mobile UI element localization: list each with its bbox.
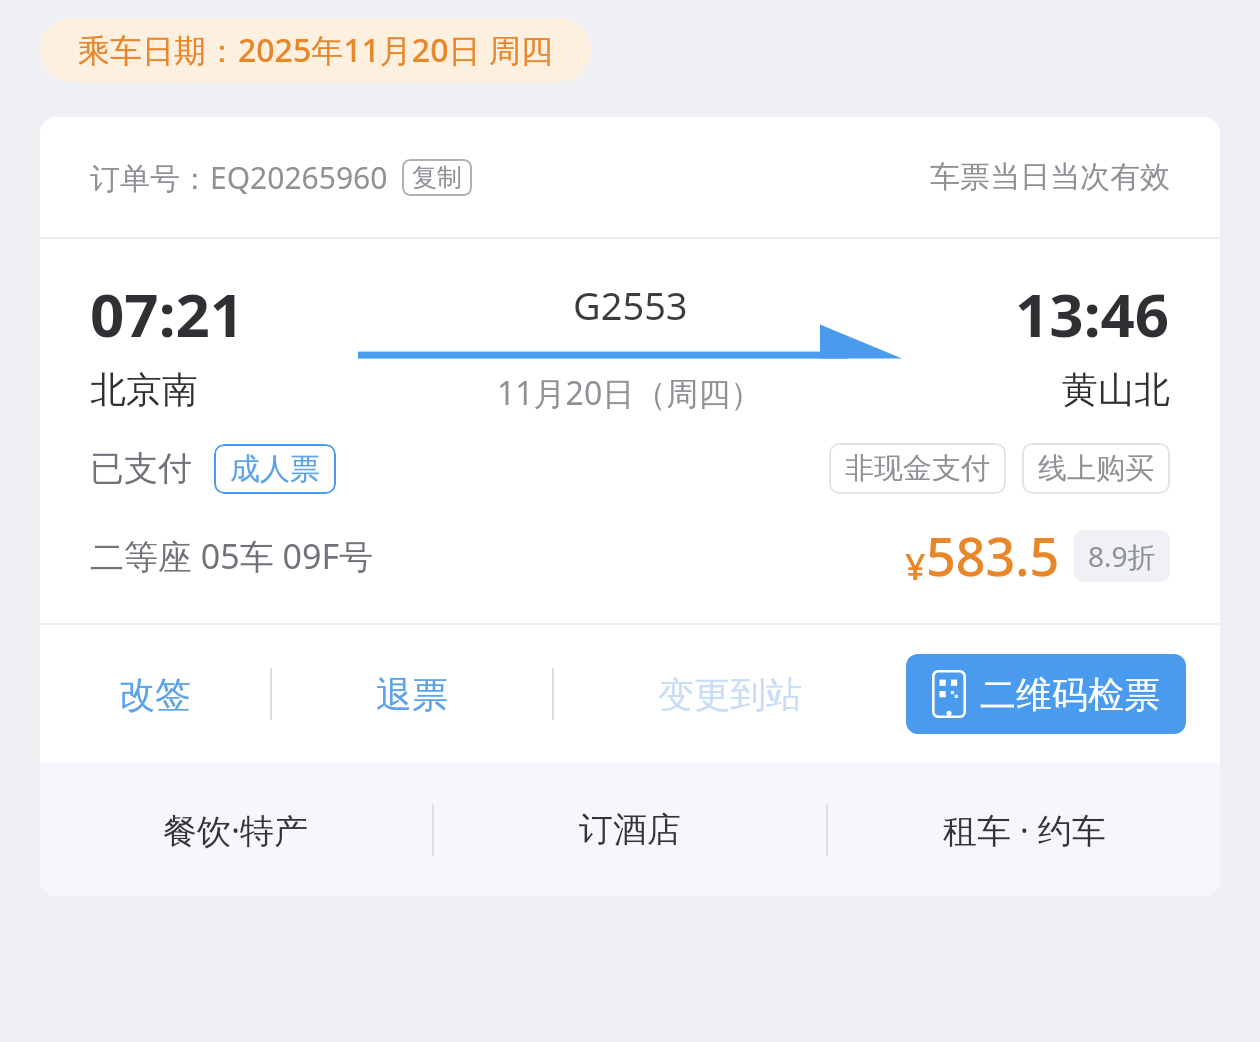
staticText: 车票当日当次有效 xyxy=(930,158,1170,196)
button[interactable]: 成人票 xyxy=(214,444,336,494)
staticText: 13:46 xyxy=(1015,273,1170,355)
staticText: 黄山北 xyxy=(1062,367,1170,412)
button[interactable]: 租车 · 约车 xyxy=(828,763,1220,896)
staticText: 订酒店 xyxy=(579,808,681,851)
staticText: 北京南 xyxy=(90,367,198,412)
button[interactable]: 退票 xyxy=(272,625,552,763)
staticText: 成人票 xyxy=(230,450,320,488)
button[interactable]: QR code ticket check xyxy=(906,654,1186,734)
staticText: 复制 xyxy=(412,162,462,193)
other: QR code ticket check xyxy=(932,670,966,718)
staticText: 07:21 xyxy=(90,273,245,355)
button[interactable]: 复制 xyxy=(402,159,472,196)
button[interactable]: 订酒店 xyxy=(434,763,826,896)
button[interactable]: 乘车日期：2025年11月20日 周四 xyxy=(40,18,591,82)
staticText: 已支付 xyxy=(90,447,192,490)
staticText: 乘车日期：2025年11月20日 周四 xyxy=(78,28,553,72)
button[interactable]: 变更到站 xyxy=(554,625,906,763)
staticText: 餐饮·特产 xyxy=(163,807,309,853)
staticText: 8.9折 xyxy=(1088,537,1156,575)
staticText: 改签 xyxy=(119,672,191,717)
staticText: ¥ xyxy=(905,542,926,591)
staticText: 11月20日（周四） xyxy=(497,371,763,415)
staticText: G2553 xyxy=(573,279,688,331)
button[interactable]: 餐饮·特产 xyxy=(40,763,432,896)
staticText: 变更到站 xyxy=(658,672,802,717)
staticText: 二等座 05车 09F号 xyxy=(90,533,374,579)
staticText: 租车 · 约车 xyxy=(943,807,1106,853)
staticText: 非现金支付 xyxy=(845,450,990,487)
staticText: 二维码检票 xyxy=(980,672,1160,717)
staticText: 订单号：EQ20265960 xyxy=(90,157,388,198)
button[interactable]: 改签 xyxy=(40,625,270,763)
staticText: 线上购买 xyxy=(1038,450,1154,487)
staticText: 退票 xyxy=(376,672,448,717)
staticText: 583.5 xyxy=(926,520,1060,591)
